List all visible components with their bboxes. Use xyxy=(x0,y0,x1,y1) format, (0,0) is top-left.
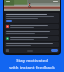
button[interactable]: Alert xyxy=(5,24,59,29)
button[interactable] xyxy=(5,42,59,47)
button[interactable] xyxy=(5,13,59,23)
button[interactable]: Activity xyxy=(5,36,59,41)
button[interactable]: Stats xyxy=(27,50,33,52)
button[interactable]: Start workout xyxy=(51,49,58,52)
button[interactable] xyxy=(6,20,12,22)
staticText: Stay motivated xyxy=(16,58,48,64)
other: Activity xyxy=(6,37,9,40)
other: Alert xyxy=(6,25,9,28)
button[interactable] xyxy=(5,30,59,35)
button[interactable]: Menu xyxy=(6,49,9,52)
staticText: with instant feedback xyxy=(9,65,55,71)
